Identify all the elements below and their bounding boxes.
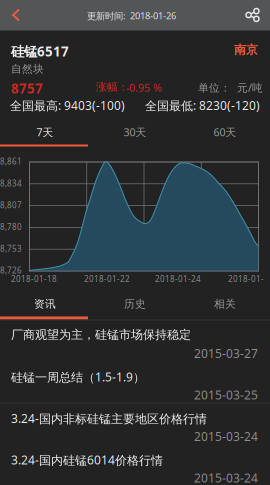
- staticText: 8,807: [0, 200, 22, 210]
- staticText: 涨幅：: [96, 80, 129, 94]
- button[interactable]: Back: [0, 0, 33, 30]
- staticText: 2018-01-: [228, 273, 264, 284]
- staticText: 2015-03-27: [194, 345, 258, 361]
- staticText: 单位： 元/吨: [198, 80, 263, 95]
- staticText: 历史: [124, 297, 146, 310]
- staticText: 资讯: [34, 297, 56, 310]
- staticText: 8,861: [0, 156, 22, 167]
- button[interactable]: 相关: [180, 282, 270, 319]
- staticText: 8,726: [0, 265, 22, 276]
- staticText: 全国最高: 9403(-100): [10, 97, 125, 113]
- staticText: 南京: [234, 42, 258, 57]
- staticText: 8,834: [0, 178, 22, 189]
- button[interactable]: Share: [234, 0, 270, 30]
- button[interactable]: 60天: [180, 115, 270, 148]
- staticText: 全国最低: 8230(-120): [145, 97, 260, 113]
- staticText: 硅锰一周总结（1.5-1.9）: [11, 369, 145, 385]
- button[interactable]: 3.24-国内硅锰6014价格行情: [0, 444, 270, 485]
- staticText: 60天: [213, 125, 236, 139]
- staticText: 2015-03-25: [194, 387, 258, 403]
- staticText: 3.24-国内硅锰6014价格行情: [11, 452, 163, 468]
- button[interactable]: 历史: [90, 282, 180, 319]
- staticText: 30天: [123, 125, 146, 139]
- staticText: 2015-03-24: [194, 428, 258, 444]
- button[interactable]: 硅锰一周总结（1.5-1.9）: [0, 361, 270, 402]
- staticText: 2018-01-22: [84, 273, 130, 284]
- staticText: 自然块: [11, 62, 44, 76]
- staticText: 2018-01-18: [11, 273, 57, 284]
- staticText: 7天: [36, 125, 53, 139]
- staticText: 2018-01-24: [155, 273, 201, 284]
- staticText: 2015-03-24: [194, 470, 258, 485]
- staticText: 3.24-国内非标硅锰主要地区价格行情: [11, 410, 207, 426]
- staticText: 硅锰6517: [11, 42, 69, 60]
- button[interactable]: 7天: [0, 115, 90, 148]
- staticText: 8,753: [0, 243, 22, 254]
- staticText: 厂商观望为主，硅锰市场保持稳定: [11, 327, 191, 342]
- button[interactable]: 3.24-国内非标硅锰主要地区价格行情: [0, 402, 270, 444]
- button[interactable]: 厂商观望为主，硅锰市场保持稳定: [0, 319, 270, 361]
- button[interactable]: 资讯: [0, 282, 90, 319]
- staticText: 8757: [11, 79, 43, 97]
- staticText: 相关: [214, 297, 236, 310]
- button[interactable]: 30天: [90, 115, 180, 148]
- staticText: 8,780: [0, 222, 22, 232]
- staticText: -0.95 %: [126, 80, 162, 95]
- staticText: 更新时间: 2018-01-26: [87, 9, 176, 22]
